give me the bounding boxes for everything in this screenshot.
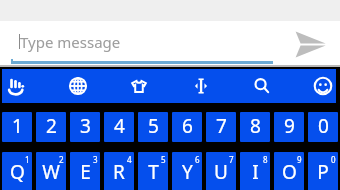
staticText: 6 [182,113,193,139]
staticText: Y [182,159,193,185]
button[interactable]: Gestures [4,69,30,103]
button[interactable]: Type message [0,21,282,65]
staticText: 7 [216,113,227,139]
button[interactable]: Search [249,69,275,103]
button[interactable]: Language [65,69,91,103]
staticText: 8 [250,113,261,139]
staticText: I [252,159,259,185]
button[interactable]: W [36,152,66,190]
staticText: 4 [127,154,132,165]
button[interactable]: Y [172,152,202,190]
staticText: R [113,159,125,185]
button[interactable]: U [206,152,236,190]
staticText: P [317,159,329,185]
button[interactable]: 3 [70,112,100,142]
staticText: U [214,159,228,185]
button[interactable]: 9 [274,112,304,142]
button[interactable]: T [138,152,168,190]
staticText: 1 [12,113,23,139]
staticText: E [80,159,91,185]
button[interactable]: O [274,152,304,190]
button[interactable]: E [70,152,100,190]
staticText: 2 [46,113,57,139]
staticText: W [42,159,60,185]
button[interactable]: 0 [308,112,338,142]
staticText: 4 [114,113,125,139]
staticText: 3 [80,113,91,139]
staticText: O [282,159,297,185]
button[interactable]: Q [2,152,32,190]
staticText: 5 [148,113,159,139]
button[interactable]: P [308,152,338,190]
button[interactable]: Send [282,21,340,65]
button[interactable]: 4 [104,112,134,142]
staticText: 6 [195,154,200,165]
button[interactable]: 7 [206,112,236,142]
staticText: 2 [59,154,64,165]
button[interactable]: R [104,152,134,190]
staticText: Type message [20,32,121,52]
staticText: 0 [331,154,336,165]
button[interactable]: 6 [172,112,202,142]
staticText: 7 [229,154,234,165]
staticText: 3 [93,154,98,165]
staticText: T [148,159,159,185]
button[interactable]: Emoji [310,69,336,103]
staticText: Q [10,159,25,185]
staticText: 8 [263,154,268,165]
button[interactable]: 5 [138,112,168,142]
button[interactable]: I [240,152,270,190]
button[interactable]: 1 [2,112,32,142]
staticText: 9 [297,154,302,165]
button[interactable]: 2 [36,112,66,142]
button[interactable]: 8 [240,112,270,142]
staticText: 9 [284,113,295,139]
button[interactable]: Themes [126,69,152,103]
staticText: 5 [161,154,166,165]
button[interactable]: Cursor control [188,69,214,103]
staticText: 1 [25,154,30,165]
staticText: 0 [318,113,329,139]
